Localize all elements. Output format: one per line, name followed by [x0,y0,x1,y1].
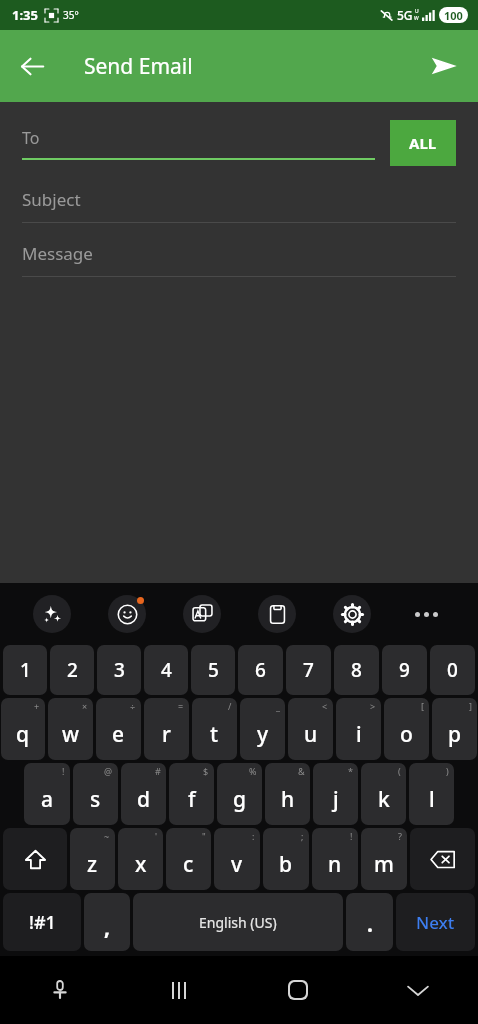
staticText: " [202,830,206,842]
button[interactable]: s [73,763,118,825]
button[interactable]: k [361,763,406,825]
button[interactable]: l [409,763,454,825]
staticText: z [87,850,98,879]
button[interactable]: j [313,763,358,825]
button[interactable]: AI suggestions [14,583,89,645]
staticText: 5G [397,7,413,23]
staticText: To [22,127,40,149]
button[interactable]: 1 [3,645,47,695]
staticText: y [257,720,269,749]
button[interactable]: 0 [430,645,475,695]
button[interactable]: More options [389,583,464,645]
staticText: , [104,913,110,942]
button[interactable]: c [166,828,211,890]
button[interactable]: z [70,828,115,890]
button[interactable]: 5 [191,645,235,695]
staticText: _ [276,700,280,712]
staticText: / [228,700,232,712]
button[interactable]: Backspace [410,828,475,890]
button[interactable]: English (US) [133,893,343,951]
staticText: ÷ [130,700,136,712]
button[interactable]: 6 [238,645,283,695]
button[interactable]: 9 [382,645,427,695]
button[interactable]: Clipboard [239,583,314,645]
button[interactable]: w [48,698,93,760]
button[interactable]: x [118,828,163,890]
button[interactable]: Hide keyboard [358,956,478,1024]
button[interactable]: Settings [314,583,389,645]
button[interactable]: Next [396,893,475,951]
staticText: l [429,785,435,814]
staticText: i [356,720,362,749]
button[interactable]: Voice input [0,956,119,1024]
button[interactable]: 3 [97,645,141,695]
staticText: 9 [399,657,410,683]
button[interactable]: m [361,828,407,890]
button[interactable]: t [192,698,237,760]
staticText: > [370,700,376,712]
button[interactable]: Shift [3,828,67,890]
button[interactable]: e [96,698,141,760]
staticText: ! [62,765,65,777]
staticText: w [62,720,79,749]
button[interactable]: . [346,893,393,951]
staticText: ; [301,830,304,842]
staticText: @ [104,765,113,777]
button[interactable]: i [336,698,381,760]
button[interactable]: p [432,698,477,760]
button[interactable]: h [265,763,310,825]
button[interactable]: 2 [50,645,94,695]
staticText: # [155,765,161,777]
staticText: f [188,785,196,814]
button[interactable]: r [144,698,189,760]
staticText: = [178,700,184,712]
staticText: < [322,700,328,712]
button[interactable]: u [288,698,333,760]
staticText: 5 [208,657,219,683]
button[interactable]: !#1 [3,893,81,951]
button[interactable]: a [24,763,70,825]
staticText: U [415,8,419,15]
button[interactable]: 7 [286,645,331,695]
staticText: b [279,850,293,879]
staticText: × [82,700,88,712]
button[interactable]: Emoji [89,583,164,645]
button[interactable]: y [240,698,285,760]
button[interactable]: Translate [164,583,239,645]
button[interactable]: ALL [390,120,456,166]
button[interactable]: , [84,893,130,951]
staticText: h [281,785,295,814]
staticText: W [414,15,419,22]
staticText: x [135,850,147,879]
button[interactable]: Home [238,956,358,1024]
button[interactable]: 8 [334,645,379,695]
button[interactable]: Message [22,242,456,277]
staticText: : [252,830,255,842]
staticText: . [367,910,373,939]
staticText: [ [421,700,424,712]
button[interactable]: v [214,828,260,890]
button[interactable]: Back [8,42,56,90]
staticText: Send Email [84,52,193,81]
button[interactable]: b [263,828,309,890]
button[interactable]: o [384,698,429,760]
button[interactable]: Recent apps [119,956,238,1024]
staticText: $ [203,765,209,777]
button[interactable]: 4 [144,645,188,695]
staticText: t [210,720,219,749]
staticText: k [378,785,390,814]
staticText: ) [446,765,449,777]
button[interactable]: f [169,763,214,825]
button[interactable]: n [312,828,358,890]
staticText: p [448,720,462,749]
staticText: a [41,785,54,814]
button[interactable]: Send [420,42,468,90]
staticText: g [233,785,247,814]
staticText: 35° [63,8,79,22]
button[interactable]: d [121,763,166,825]
button[interactable]: g [217,763,262,825]
staticText: 100 [444,8,463,23]
staticText: 3 [114,657,125,683]
button[interactable]: Subject [22,188,456,223]
button[interactable]: q [1,698,45,760]
